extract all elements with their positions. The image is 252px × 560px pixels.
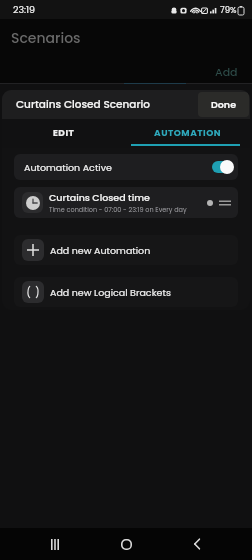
button[interactable]: Add new Automation xyxy=(14,235,238,265)
button[interactable]: Curtains Closed time xyxy=(14,187,238,218)
staticText: Scenarios xyxy=(11,28,81,48)
button[interactable]: Home xyxy=(110,528,142,560)
staticText: 23:19 xyxy=(13,3,36,16)
staticText: EDIT xyxy=(53,127,75,140)
staticText: Curtains Closed time xyxy=(49,191,150,204)
button[interactable]: Recents xyxy=(39,528,71,560)
staticText: Done xyxy=(211,98,237,111)
staticText: Add xyxy=(215,64,238,79)
staticText: Add new Automation xyxy=(50,244,151,257)
staticText: Time condition - 07:00 - 23:19 on Every … xyxy=(49,205,187,214)
button[interactable]: Done xyxy=(198,92,249,117)
button[interactable]: Back xyxy=(181,528,213,560)
staticText: Add new Logical Brackets xyxy=(50,286,171,299)
staticText: AUTOMATION xyxy=(154,127,222,140)
staticText: Curtains Closed Scenario xyxy=(16,97,150,112)
staticText: Automation Active xyxy=(24,161,112,174)
button[interactable]: Automation Active xyxy=(14,154,238,180)
button[interactable]: AUTOMATION xyxy=(126,119,250,148)
button[interactable]: Add new Logical Brackets xyxy=(14,277,238,307)
button[interactable]: EDIT xyxy=(2,119,126,148)
staticText: 79% xyxy=(220,4,237,16)
